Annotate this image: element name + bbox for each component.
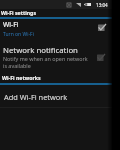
staticText: Wi-Fi bbox=[3, 20, 19, 29]
staticText: Wi-Fi settings bbox=[1, 9, 36, 16]
button[interactable]: Wi-Fi on bbox=[98, 23, 106, 31]
staticText: Notify me when an open network bbox=[3, 55, 88, 62]
staticText: Network notification bbox=[3, 45, 78, 56]
staticText: Wi-Fi networks bbox=[2, 74, 41, 81]
button[interactable]: Add Wi-Fi network bbox=[0, 84, 112, 107]
other: Battery bbox=[84, 3, 91, 6]
staticText: is available bbox=[3, 62, 31, 69]
other: SD card bbox=[67, 3, 71, 7]
staticText: Turn on Wi-Fi bbox=[3, 31, 34, 38]
button[interactable]: Wi-Fi bbox=[0, 18, 112, 39]
staticText: Add Wi-Fi network bbox=[4, 92, 68, 102]
staticText: 13:04 bbox=[96, 2, 108, 8]
other: Signal strength bbox=[76, 3, 81, 7]
button[interactable]: Network notification bbox=[97, 53, 105, 61]
button[interactable]: Network notification bbox=[0, 42, 112, 71]
